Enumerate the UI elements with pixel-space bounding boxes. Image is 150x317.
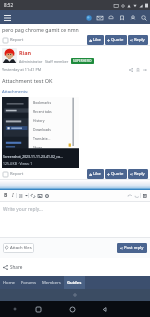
staticText: B: [4, 192, 8, 199]
button[interactable]: Back: [99, 304, 109, 314]
button[interactable]: Write your reply...: [0, 202, 150, 237]
staticText: Rian: [19, 49, 32, 56]
button[interactable]: Alerts: [105, 12, 116, 23]
staticText: Share...: [33, 145, 45, 150]
button[interactable]: Toggle BB code: [141, 192, 148, 199]
staticText: Report: [10, 37, 24, 43]
button[interactable]: Recents: [33, 304, 43, 314]
staticText: SUPERHERO: [73, 59, 92, 63]
staticText: Post reply: [124, 245, 144, 251]
staticText: Reply: [134, 171, 145, 177]
button[interactable]: Undo: [126, 192, 133, 199]
button[interactable]: Quote: [105, 35, 127, 45]
button[interactable]: Post number: [141, 66, 148, 73]
staticText: 8:52: [4, 2, 14, 8]
button[interactable]: B: [2, 192, 9, 199]
staticText: I: [12, 192, 14, 199]
staticText: Staff member: [45, 59, 69, 64]
button[interactable]: Home: [0, 276, 18, 289]
button[interactable]: Quote: [105, 169, 127, 179]
button[interactable]: Share: [0, 262, 26, 272]
button[interactable]: Open navigation menu: [1, 11, 14, 24]
button[interactable]: Attachment screenshot: [2, 97, 79, 168]
staticText: Like: [93, 171, 101, 177]
button[interactable]: Forums: [18, 276, 39, 289]
button[interactable]: Assistant: [10, 304, 20, 314]
button[interactable]: Inbox: [94, 12, 105, 23]
button[interactable]: Bookmarks: [116, 12, 127, 23]
button[interactable]: Report: [1, 36, 26, 44]
staticText: Translate...: [33, 136, 51, 141]
button[interactable]: Redo: [133, 192, 140, 199]
staticText: Report: [10, 171, 24, 177]
staticText: Yesterday at 11:41 PM: [2, 67, 42, 72]
button[interactable]: Like: [87, 169, 104, 179]
button[interactable]: Members: [39, 276, 64, 289]
button[interactable]: Reply: [128, 169, 148, 179]
staticText: Reply: [134, 37, 145, 43]
staticText: Quote: [111, 171, 124, 177]
staticText: Members: [42, 280, 61, 286]
button[interactable]: Reply: [128, 35, 148, 45]
staticText: Bookmarks: [33, 100, 52, 105]
staticText: Screenshot_2023-11-11-23-41-02_ca...: [3, 154, 63, 159]
button[interactable]: Insert link: [29, 192, 36, 199]
staticText: History: [33, 118, 45, 123]
button[interactable]: Attach files: [3, 243, 34, 253]
button[interactable]: Post reply: [117, 243, 147, 253]
staticText: 125.4 KB · Views: 1: [3, 161, 33, 166]
staticText: Forums: [21, 280, 36, 286]
staticText: Write your reply...: [3, 206, 43, 213]
button[interactable]: Like: [87, 35, 104, 45]
button[interactable]: Home: [67, 304, 77, 314]
button[interactable]: Emoji: [43, 192, 50, 199]
button[interactable]: Guides: [64, 276, 85, 289]
staticText: Administrator: [19, 59, 43, 64]
button[interactable]: Report: [1, 170, 26, 178]
staticText: Downloads: [33, 127, 51, 132]
staticText: Recent tabs: [33, 109, 52, 114]
staticText: Home: [3, 280, 15, 286]
staticText: Guides: [67, 280, 82, 286]
button[interactable]: Account: [127, 12, 138, 23]
button[interactable]: Site: [83, 12, 94, 23]
button[interactable]: Bookmark post: [134, 66, 141, 73]
staticText: Share: [10, 264, 23, 270]
staticText: Like: [93, 37, 101, 43]
staticText: Attachment test OK: [2, 77, 53, 84]
button[interactable]: Attachments:: [2, 89, 29, 95]
button[interactable]: Bullet list: [17, 192, 24, 199]
button[interactable]: Insert image: [36, 192, 43, 199]
button[interactable]: Search: [138, 12, 149, 23]
staticText: Quote: [111, 37, 124, 43]
staticText: pero pag chrome gamit ce nmn: [2, 26, 79, 33]
staticText: Attach files: [10, 245, 32, 251]
button[interactable]: Share post: [127, 66, 134, 73]
button[interactable]: I: [9, 192, 16, 199]
